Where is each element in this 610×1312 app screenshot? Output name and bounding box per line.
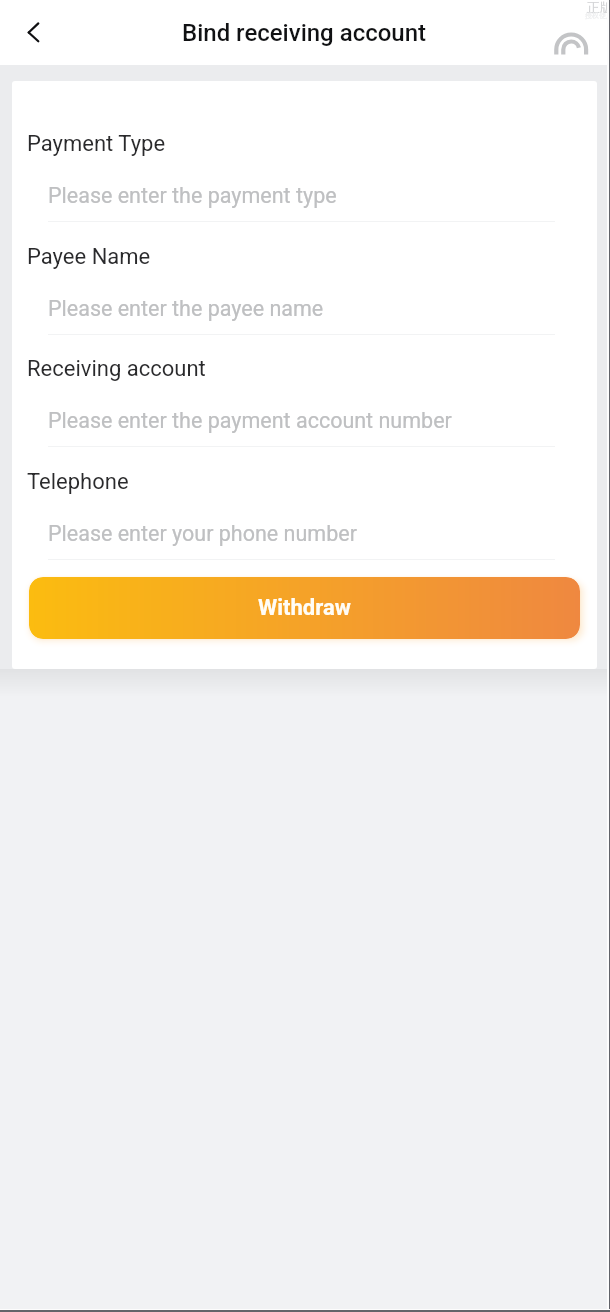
staticText: Payment Type [27,131,166,157]
button[interactable]: Please enter the payee name [48,292,555,335]
button[interactable]: Back [0,0,62,65]
button[interactable]: Withdraw [29,577,580,639]
staticText: Please enter the payee name [48,296,324,321]
staticText: Telephone [27,469,129,495]
staticText: Please enter your phone number [48,521,357,546]
staticText: Payee Name [27,244,151,270]
button[interactable]: Please enter the payment type [48,179,555,222]
button[interactable]: Please enter the payment account number [48,404,555,447]
staticText: 正版 [587,0,610,15]
staticText: Bind receiving account [182,19,426,47]
button[interactable]: Please enter your phone number [48,517,555,560]
staticText: Receiving account [27,356,206,382]
staticText: Please enter the payment type [48,183,337,208]
staticText: 授权使用 [585,11,610,20]
staticText: Withdraw [258,595,351,621]
staticText: Please enter the payment account number [48,408,452,433]
